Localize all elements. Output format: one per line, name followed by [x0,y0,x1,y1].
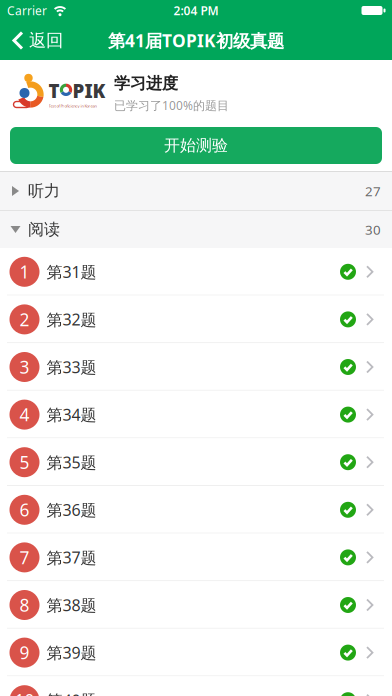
button[interactable]: 9 [0,629,392,676]
staticText: 5 [19,451,29,474]
staticText: 第33题 [46,356,96,378]
staticText: 第38题 [46,594,96,616]
button[interactable]: 3 [0,343,392,391]
button[interactable]: 7 [0,534,392,581]
button[interactable]: 6 [0,486,392,534]
button[interactable]: 8 [0,581,392,629]
staticText: 6 [19,498,29,521]
staticText: 7 [19,546,29,569]
staticText: 第32题 [46,309,96,330]
staticText: 第39题 [46,642,96,663]
staticText: PIK [72,78,105,103]
staticText: 27 [365,182,381,200]
staticText: 第31题 [46,261,96,282]
staticText: 2:04 PM [173,2,218,18]
staticText: 学习进度 [114,74,178,93]
staticText: T [48,78,59,103]
staticText: 4 [19,403,29,426]
button[interactable]: 5 [0,438,392,486]
staticText: 听力 [28,181,60,201]
staticText: 第36题 [46,499,96,520]
staticText: Test of Proficiency in Korean [48,103,96,108]
staticText: 9 [19,641,29,664]
staticText: 第41届TOPIK初级真题 [108,29,284,52]
staticText: 1 [19,260,29,283]
button[interactable]: 4 [0,391,392,438]
button[interactable]: 开始测验 [10,127,382,164]
staticText: 阅读 [28,220,60,239]
staticText: 8 [19,593,29,616]
button[interactable]: 阅读 [0,220,392,239]
staticText: 返回 [29,30,63,51]
button[interactable]: 听力 [0,181,392,201]
staticText: 10 [14,689,34,696]
staticText: 开始测验 [164,136,228,155]
button[interactable]: 10 [0,676,392,696]
staticText: 3 [19,355,29,378]
staticText: 第40题 [46,690,96,696]
staticText: 30 [365,221,381,238]
button[interactable]: 返回 [12,30,63,51]
staticText: 已学习了100%的题目 [114,97,229,113]
staticText: 第37题 [46,547,96,568]
button[interactable]: 2 [0,296,392,343]
staticText: 第35题 [46,452,96,473]
staticText: 第34题 [46,404,96,425]
staticText: Carrier [7,2,47,18]
button[interactable]: 1 [0,248,392,296]
staticText: 2 [19,308,29,331]
